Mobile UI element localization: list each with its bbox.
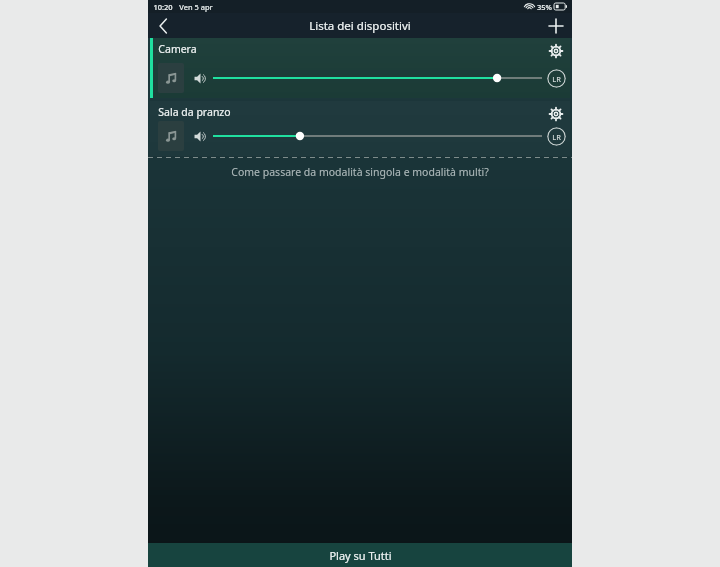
staticText: Camera [158, 42, 197, 56]
button[interactable]: Left Right channel [547, 127, 566, 146]
staticText: LR [552, 74, 561, 84]
button[interactable]: Album art [158, 121, 184, 151]
button[interactable]: Mute [194, 72, 207, 85]
staticText: 10:20 [153, 2, 173, 12]
staticText: Ven 5 apr [179, 2, 213, 12]
staticText: Come passare da modalità singola e modal… [231, 165, 489, 179]
button[interactable] [213, 128, 542, 144]
button[interactable]: Camera [150, 38, 570, 98]
button[interactable]: Settings [544, 102, 568, 126]
button[interactable] [213, 70, 542, 86]
staticText: Sala da pranzo [158, 105, 231, 119]
button[interactable]: Back [148, 13, 178, 38]
staticText: 35% [537, 2, 552, 12]
button[interactable]: Add device [540, 13, 572, 38]
staticText: LR [552, 132, 561, 142]
button[interactable]: Left Right channel [547, 69, 566, 88]
button[interactable]: Mute [194, 130, 207, 143]
staticText: Play su Tutti [329, 548, 392, 563]
staticText: Lista dei dispositivi [309, 18, 411, 34]
button[interactable]: Sala da pranzo [150, 101, 570, 156]
button[interactable]: Settings [544, 39, 568, 63]
button[interactable]: Album art [158, 63, 184, 93]
button[interactable]: Play su Tutti [148, 543, 572, 567]
